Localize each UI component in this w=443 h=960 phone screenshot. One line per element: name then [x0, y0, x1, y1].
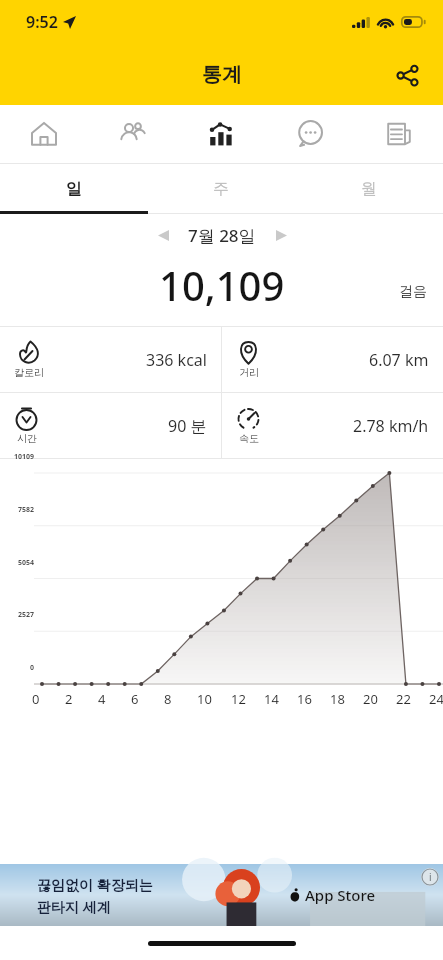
- staticText: 끊임없이 확장되는: [37, 875, 153, 894]
- staticText: 10: [197, 690, 443, 708]
- staticText: 12: [231, 690, 443, 708]
- staticText: 9:52: [26, 11, 58, 33]
- staticText: 18: [330, 690, 443, 708]
- button[interactable]: Share: [383, 51, 431, 99]
- staticText: 0: [32, 690, 433, 708]
- staticText: 5054: [0, 558, 34, 568]
- button[interactable]: 월: [295, 164, 443, 214]
- button[interactable]: 시간: [0, 393, 221, 458]
- staticText: 24: [429, 690, 443, 708]
- button[interactable]: 거리: [222, 327, 443, 392]
- staticText: 7월 28일: [188, 224, 256, 247]
- staticText: 2.78 km/h: [353, 415, 429, 437]
- staticText: App Store: [305, 885, 376, 905]
- staticText: 6: [131, 690, 443, 708]
- button[interactable]: Feed: [354, 105, 443, 163]
- staticText: 4: [98, 690, 443, 708]
- staticText: 시간: [17, 432, 37, 445]
- staticText: 14: [264, 690, 443, 708]
- staticText: 7582: [0, 505, 34, 515]
- staticText: 336 kcal: [146, 349, 207, 371]
- staticText: 칼로리: [14, 366, 44, 379]
- staticText: 22: [396, 690, 443, 708]
- button[interactable]: Next day: [264, 218, 298, 252]
- staticText: i: [429, 870, 432, 884]
- button[interactable]: Statistics: [176, 105, 265, 163]
- staticText: 통계: [202, 62, 242, 87]
- button[interactable]: Home: [0, 105, 88, 163]
- staticText: 2: [65, 690, 443, 708]
- staticText: 일: [66, 179, 82, 199]
- button[interactable]: Previous day: [146, 218, 180, 252]
- button[interactable]: Friends: [88, 105, 176, 163]
- staticText: 90 분: [168, 415, 207, 437]
- staticText: 20: [363, 690, 443, 708]
- button[interactable]: 속도: [222, 393, 443, 458]
- staticText: 주: [213, 179, 229, 199]
- staticText: 월: [361, 179, 377, 199]
- button[interactable]: Ad info: [421, 868, 439, 886]
- button[interactable]: 칼로리: [0, 327, 221, 392]
- staticText: 8: [164, 690, 443, 708]
- staticText: 2527: [0, 610, 34, 620]
- button[interactable]: 주: [147, 164, 295, 214]
- staticText: 10,109: [159, 258, 285, 312]
- staticText: 6.07 km: [369, 349, 429, 371]
- staticText: 거리: [239, 366, 259, 379]
- staticText: 16: [297, 690, 443, 708]
- staticText: 속도: [239, 432, 259, 445]
- staticText: 10109: [0, 452, 34, 462]
- button[interactable]: Chat: [265, 105, 354, 163]
- staticText: 걸음: [399, 283, 427, 301]
- button[interactable]: 일: [0, 164, 147, 214]
- button[interactable]: App Store: [288, 885, 376, 905]
- staticText: 0: [0, 663, 34, 673]
- staticText: 판타지 세계: [37, 897, 111, 916]
